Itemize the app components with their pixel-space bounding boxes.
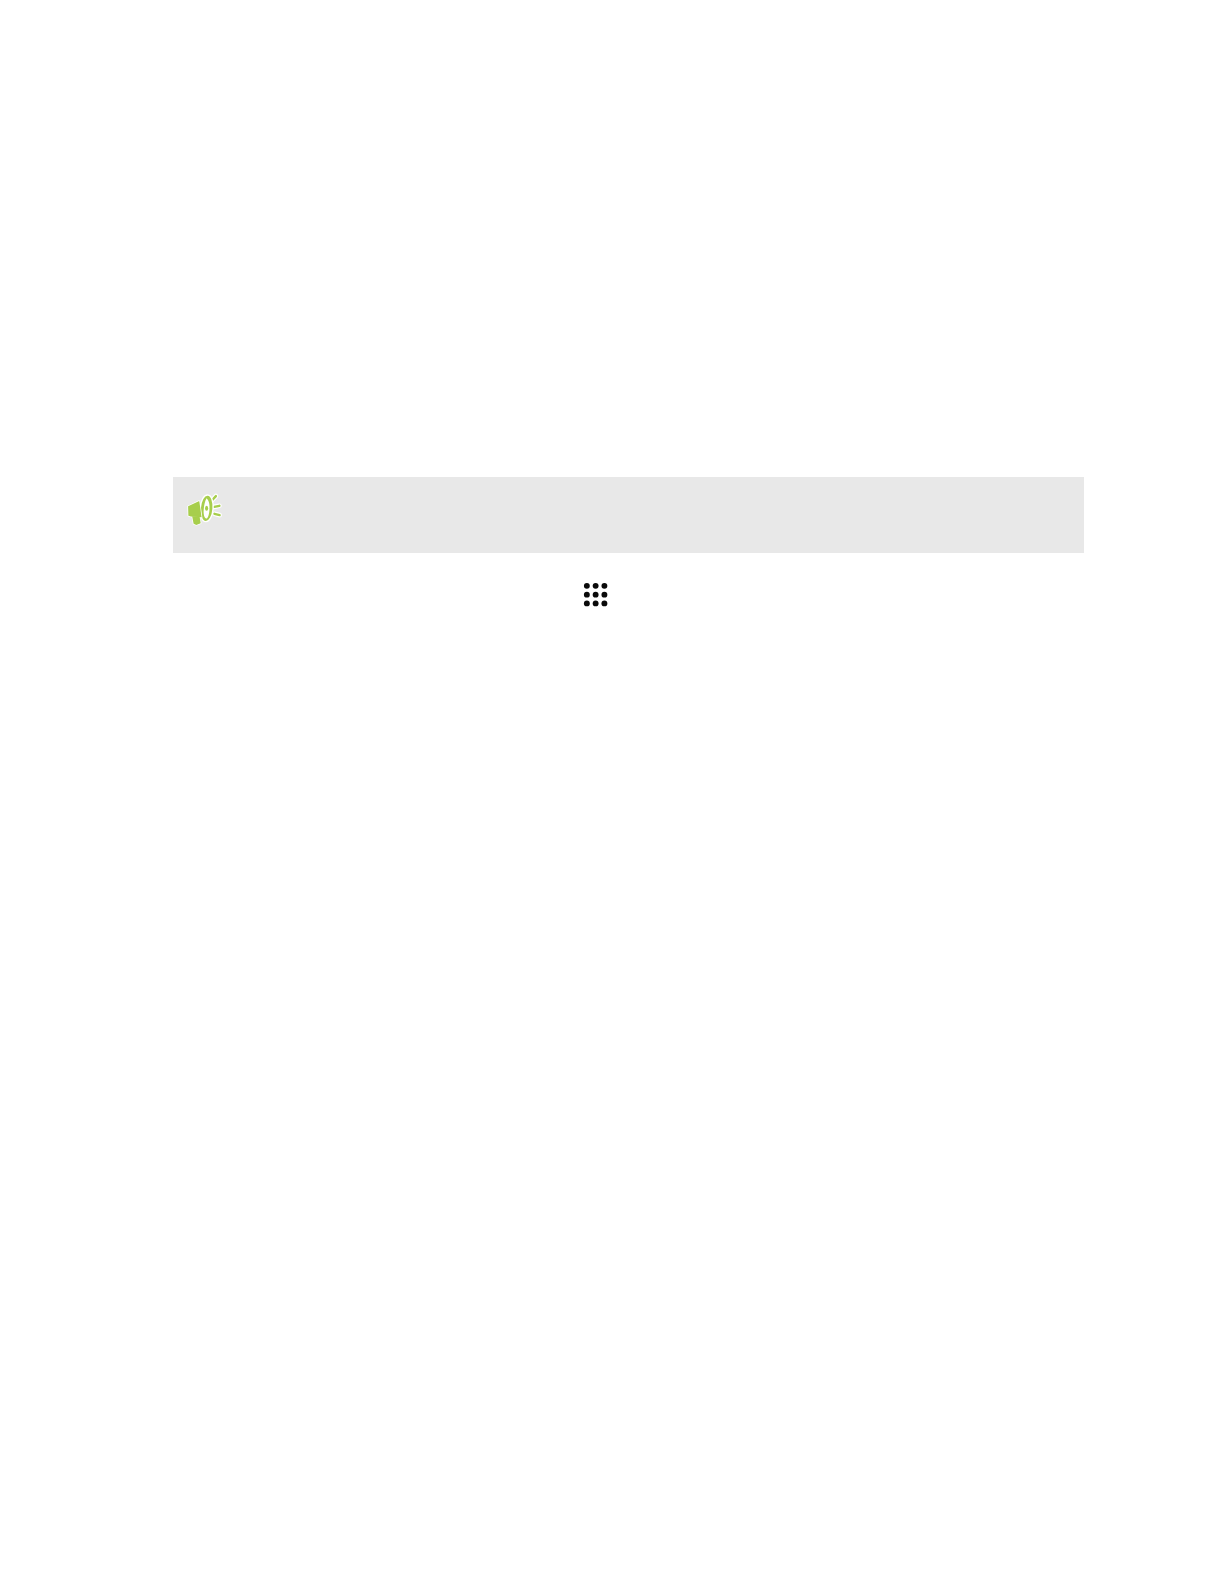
- button[interactable]: Announcement: [173, 477, 1084, 553]
- button[interactable]: Apps: [584, 583, 610, 609]
- other: Announcement: [186, 494, 220, 526]
